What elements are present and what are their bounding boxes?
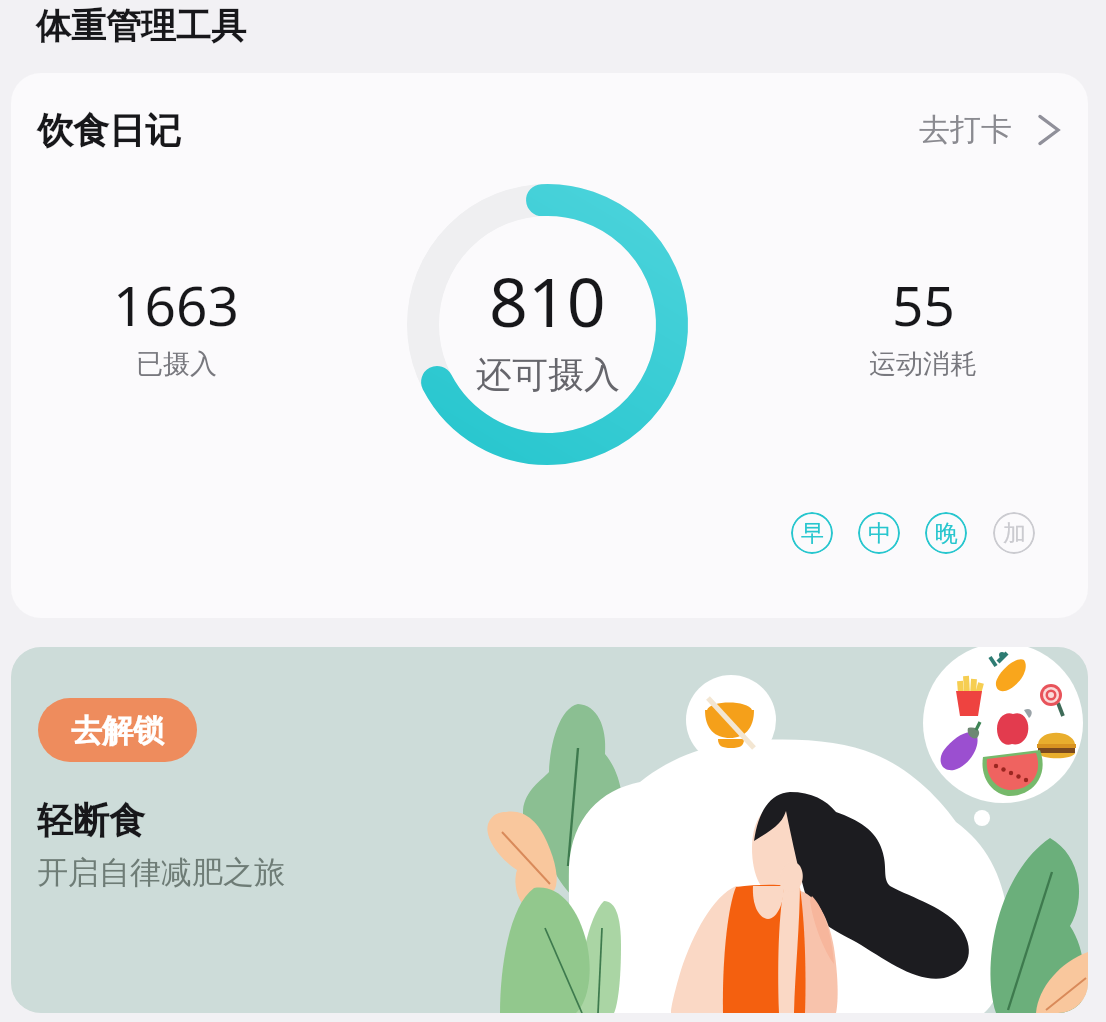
staticText: 中: [868, 519, 891, 548]
staticText: 轻断食: [37, 798, 145, 843]
staticText: 运动消耗: [869, 347, 977, 381]
button[interactable]: 中: [858, 512, 900, 554]
button[interactable]: 1663: [66, 267, 286, 381]
staticText: 晚: [935, 519, 958, 548]
button[interactable]: 55: [813, 267, 1033, 381]
staticText: 开启自律减肥之旅: [37, 853, 285, 892]
staticText: 去解锁: [71, 711, 164, 750]
staticText: 加: [1003, 519, 1026, 548]
staticText: 1663: [113, 267, 239, 342]
staticText: 体重管理工具: [36, 4, 246, 48]
staticText: 810: [489, 254, 606, 347]
button[interactable]: 晚: [925, 512, 967, 554]
staticText: 早: [801, 519, 824, 548]
button[interactable]: 去打卡: [919, 110, 1075, 149]
button[interactable]: 早: [791, 512, 833, 554]
button[interactable]: 加: [993, 512, 1035, 554]
button[interactable]: 去解锁: [38, 698, 197, 762]
staticText: 已摄入: [136, 347, 217, 381]
staticText: 去打卡: [919, 110, 1012, 149]
staticText: 55: [892, 267, 955, 342]
staticText: 饮食日记: [37, 108, 181, 153]
staticText: 还可摄入: [476, 352, 620, 397]
button[interactable]: 去解锁: [11, 647, 1088, 1013]
